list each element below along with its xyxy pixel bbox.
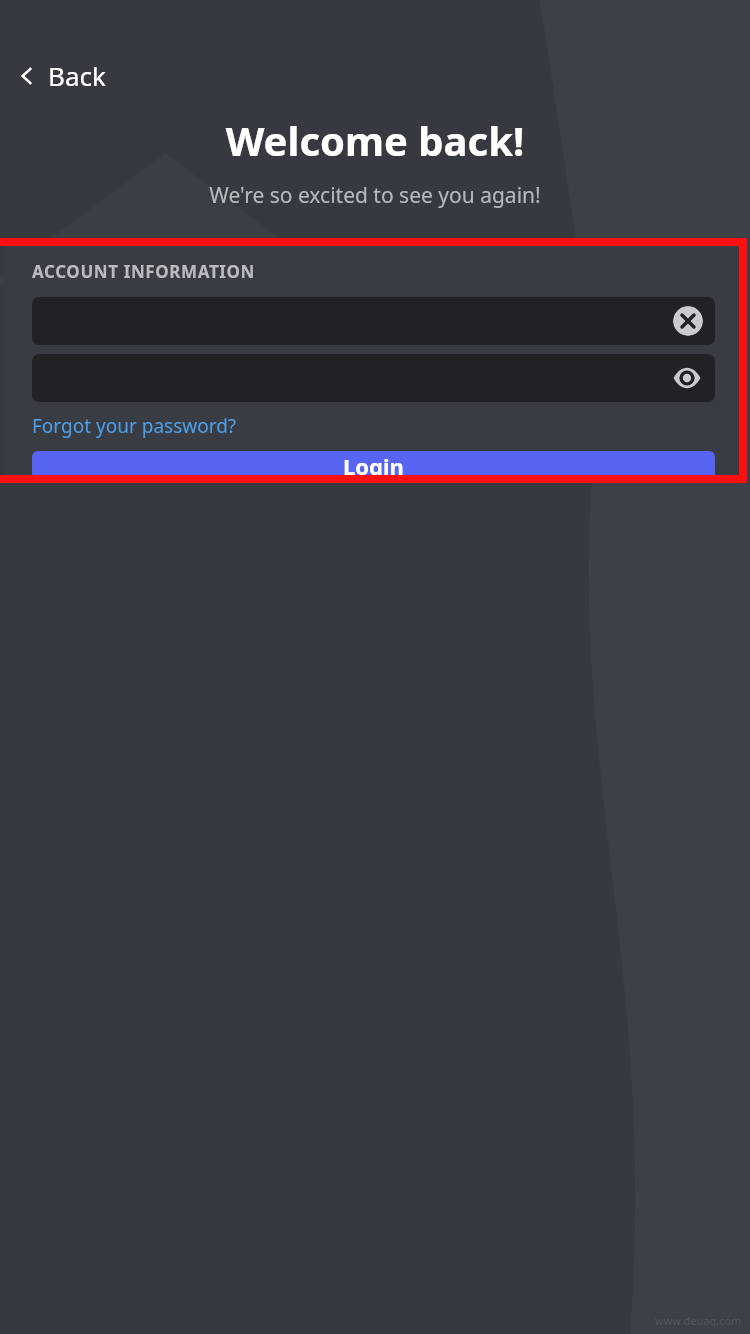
staticText: ACCOUNT INFORMATION — [32, 260, 255, 283]
staticText: Login — [343, 451, 404, 479]
button[interactable]: Clear text — [32, 297, 715, 345]
button[interactable]: Clear text — [673, 306, 703, 336]
button[interactable]: Login — [32, 451, 715, 479]
staticText: We're so excited to see you again! — [0, 181, 750, 210]
staticText: Forgot your password? — [32, 413, 237, 439]
staticText: www.deuaq.com — [655, 1313, 742, 1328]
button[interactable]: Back — [8, 52, 114, 99]
button[interactable]: Show password — [32, 354, 715, 402]
button[interactable]: Show password — [671, 362, 703, 394]
staticText: Back — [48, 58, 106, 93]
staticText: Welcome back! — [0, 113, 750, 167]
button[interactable]: Forgot your password? — [32, 410, 237, 442]
